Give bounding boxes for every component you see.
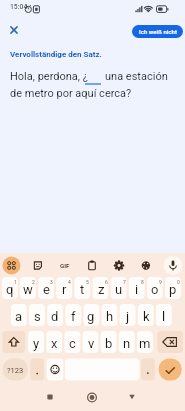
- button[interactable]: s: [29, 304, 45, 326]
- button[interactable]: Backspace: [157, 331, 183, 353]
- staticText: j: [126, 309, 130, 324]
- staticText: f: [71, 309, 76, 324]
- button[interactable]: Home: [82, 387, 102, 407]
- staticText: de metro por aquí cerca?: [10, 87, 132, 100]
- button[interactable]: Close: [4, 20, 24, 40]
- button[interactable]: q: [2, 277, 18, 299]
- staticText: e: [43, 282, 50, 297]
- staticText: a: [15, 309, 23, 324]
- staticText: 2: [32, 279, 35, 285]
- staticText: r: [62, 282, 67, 297]
- button[interactable]: v: [83, 331, 99, 353]
- button[interactable]: GIF: [53, 253, 77, 278]
- button[interactable]: Ich weiß nicht: [132, 25, 183, 38]
- staticText: d: [51, 309, 59, 324]
- staticText: q: [6, 282, 14, 297]
- staticText: z: [98, 282, 105, 297]
- button[interactable]: j: [120, 304, 136, 326]
- button[interactable]: Shift: [2, 331, 25, 353]
- button[interactable]: p: [165, 277, 181, 299]
- button[interactable]: m: [137, 331, 153, 353]
- staticText: Ich weiß nicht: [139, 28, 177, 35]
- staticText: m: [139, 336, 151, 351]
- staticText: Vervollständige den Satz.: [10, 50, 102, 59]
- staticText: o: [151, 282, 159, 297]
- staticText: GIF: [60, 262, 70, 269]
- button[interactable]: d: [47, 304, 63, 326]
- staticText: i: [135, 282, 139, 297]
- staticText: 8: [141, 279, 144, 285]
- button[interactable]: k: [138, 304, 154, 326]
- button[interactable]: Hide keyboard: [122, 387, 142, 407]
- button[interactable]: t: [74, 277, 90, 299]
- button[interactable]: c: [64, 331, 80, 353]
- staticText: p: [169, 282, 177, 297]
- button[interactable]: i: [129, 277, 145, 299]
- staticText: 5: [86, 279, 89, 285]
- button[interactable]: f: [65, 304, 81, 326]
- staticText: Hola, perdona, ¿: [10, 70, 88, 83]
- staticText: 4: [68, 279, 71, 285]
- button[interactable]: Space: [65, 359, 140, 381]
- staticText: n: [123, 336, 131, 351]
- staticText: 9: [159, 279, 162, 285]
- staticText: 15:04: [10, 3, 28, 11]
- staticText: ?123: [7, 366, 24, 375]
- button[interactable]: ?123: [3, 359, 28, 381]
- button[interactable]: Enter: [159, 359, 182, 381]
- staticText: h: [106, 309, 114, 324]
- staticText: s: [34, 309, 41, 324]
- staticText: y: [33, 336, 40, 351]
- button[interactable]: Comma: [30, 359, 44, 381]
- staticText: 1: [14, 279, 17, 285]
- staticText: w: [23, 282, 33, 297]
- staticText: v: [88, 336, 95, 351]
- staticText: 3: [50, 279, 53, 285]
- button[interactable]: r: [56, 277, 72, 299]
- button[interactable]: x: [46, 331, 62, 353]
- button[interactable]: l: [156, 304, 172, 326]
- staticText: una estación: [105, 70, 168, 83]
- staticText: c: [69, 336, 76, 351]
- staticText: b: [105, 336, 113, 351]
- button[interactable]: b: [101, 331, 117, 353]
- staticText: g: [87, 309, 95, 324]
- button[interactable]: y: [28, 331, 44, 353]
- staticText: 0: [177, 279, 180, 285]
- staticText: 7: [123, 279, 126, 285]
- button[interactable]: g: [83, 304, 99, 326]
- button[interactable]: e: [38, 277, 54, 299]
- button[interactable]: Period: [141, 359, 155, 381]
- button[interactable]: u: [111, 277, 127, 299]
- button[interactable]: z: [93, 277, 109, 299]
- button[interactable]: n: [119, 331, 135, 353]
- staticText: t: [80, 282, 85, 297]
- staticText: l: [162, 309, 166, 324]
- button[interactable]: w: [20, 277, 36, 299]
- staticText: k: [143, 309, 150, 324]
- button[interactable]: h: [102, 304, 118, 326]
- button[interactable]: o: [147, 277, 163, 299]
- staticText: x: [51, 336, 58, 351]
- button[interactable]: a: [11, 304, 27, 326]
- staticText: 6: [105, 279, 108, 285]
- button[interactable]: Emoji: [47, 359, 64, 381]
- staticText: u: [115, 282, 123, 297]
- button[interactable]: Recent apps: [40, 387, 60, 407]
